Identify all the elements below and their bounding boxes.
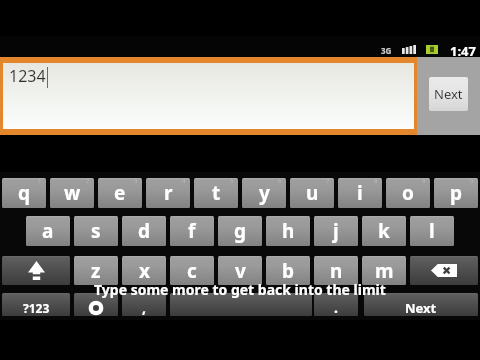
button[interactable]: g [218, 216, 262, 246]
button[interactable]: q [2, 178, 46, 208]
staticText: w [64, 180, 81, 206]
staticText: m [375, 258, 394, 284]
staticText: y [259, 180, 270, 206]
staticText: 2 [86, 178, 90, 185]
staticText: n [330, 258, 343, 284]
button[interactable]: w [50, 178, 94, 208]
staticText: k [378, 218, 390, 244]
button[interactable]: ?123 [2, 293, 70, 316]
staticText: 6 [278, 178, 282, 185]
button[interactable]: h [266, 216, 310, 246]
staticText: z [91, 258, 101, 284]
staticText: Type some more to get back into the limi… [94, 280, 386, 299]
button[interactable]: . [314, 293, 358, 316]
button[interactable]: Next [364, 293, 478, 316]
button[interactable]: u [290, 178, 334, 208]
staticText: , [142, 298, 146, 316]
staticText: u [306, 180, 319, 206]
staticText: 3 [134, 178, 138, 185]
staticText: i [357, 180, 363, 206]
staticText: 3G [381, 45, 392, 56]
button[interactable]: Shift [2, 256, 70, 285]
button[interactable]: x [122, 256, 166, 285]
button[interactable] [170, 293, 312, 316]
staticText: ?123 [23, 300, 50, 316]
button[interactable]: e [98, 178, 142, 208]
button[interactable]: l [410, 216, 454, 246]
button[interactable]: c [170, 256, 214, 285]
button[interactable]: Next [429, 77, 468, 111]
staticText: q [18, 180, 31, 206]
staticText: r [164, 180, 173, 206]
staticText: p [450, 180, 463, 206]
button[interactable]: y [242, 178, 286, 208]
staticText: 7 [326, 178, 330, 185]
staticText: b [282, 258, 295, 284]
staticText: 8 [374, 178, 378, 185]
staticText: g [234, 218, 247, 244]
button[interactable]: s [74, 216, 118, 246]
staticText: 5 [230, 178, 234, 185]
staticText: x [139, 258, 150, 284]
staticText: o [402, 180, 414, 206]
staticText: 0 [470, 178, 474, 185]
button[interactable]: Delete [410, 256, 478, 285]
staticText: f [188, 218, 196, 244]
staticText: Next [405, 299, 437, 316]
button[interactable]: b [266, 256, 310, 285]
button[interactable]: r [146, 178, 190, 208]
button[interactable]: v [218, 256, 262, 285]
button[interactable]: t [194, 178, 238, 208]
staticText: t [212, 180, 221, 206]
staticText: s [91, 218, 101, 244]
staticText: v [235, 258, 246, 284]
button[interactable]: d [122, 216, 166, 246]
button[interactable]: , [122, 293, 166, 316]
staticText: j [333, 218, 339, 244]
staticText: 1:47 [450, 42, 476, 60]
staticText: Next [434, 85, 463, 103]
staticText: e [114, 180, 126, 206]
button[interactable]: z [74, 256, 118, 285]
button[interactable]: n [314, 256, 358, 285]
staticText: 1234 [9, 65, 46, 87]
button[interactable]: k [362, 216, 406, 246]
staticText: 9 [422, 178, 426, 185]
button[interactable]: j [314, 216, 358, 246]
staticText: . [334, 298, 338, 316]
button[interactable]: i [338, 178, 382, 208]
staticText: a [42, 218, 54, 244]
staticText: d [138, 218, 151, 244]
button[interactable]: m [362, 256, 406, 285]
button[interactable]: Voice input [74, 293, 118, 316]
staticText: h [282, 218, 295, 244]
button[interactable]: f [170, 216, 214, 246]
button[interactable]: o [386, 178, 430, 208]
button[interactable]: a [26, 216, 70, 246]
staticText: c [187, 258, 197, 284]
staticText: 1 [38, 178, 42, 185]
staticText: 4 [182, 178, 186, 185]
staticText: l [429, 218, 435, 244]
button[interactable]: p [434, 178, 478, 208]
